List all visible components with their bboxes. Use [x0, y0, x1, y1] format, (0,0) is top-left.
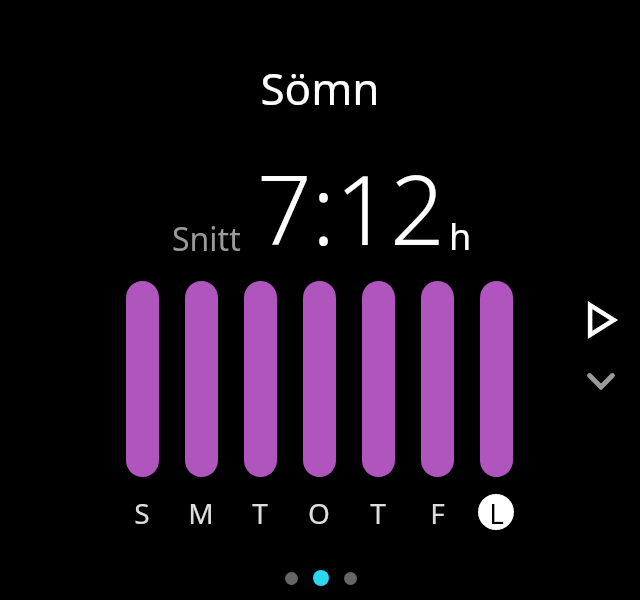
- staticText: 7:12: [257, 142, 445, 273]
- staticText: T: [252, 494, 268, 530]
- staticText: O: [308, 494, 330, 530]
- staticText: Sömn: [260, 58, 380, 118]
- button[interactable]: [126, 281, 514, 477]
- staticText: h: [449, 212, 472, 261]
- staticText: F: [430, 494, 445, 530]
- button[interactable]: M: [183, 494, 219, 530]
- button[interactable]: Scroll down: [578, 358, 624, 404]
- staticText: M: [188, 494, 214, 530]
- staticText: L: [489, 494, 504, 530]
- button[interactable]: T: [242, 494, 278, 530]
- staticText: T: [370, 494, 386, 530]
- button[interactable]: F: [419, 494, 455, 530]
- staticText: Snitt: [172, 217, 241, 261]
- button[interactable]: Next: [578, 297, 624, 343]
- button[interactable]: T: [360, 494, 396, 530]
- button[interactable]: L: [478, 494, 514, 530]
- staticText: S: [134, 494, 150, 530]
- button[interactable]: S: [124, 494, 160, 530]
- button[interactable]: O: [301, 494, 337, 530]
